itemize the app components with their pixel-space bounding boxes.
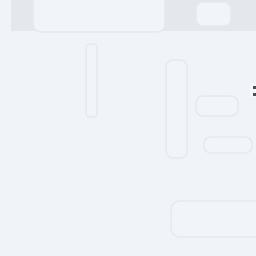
button[interactable]: Chip two — [0, 0, 48, 16]
button[interactable]: Card — [0, 0, 95, 36]
button[interactable]: Chip one — [0, 0, 42, 20]
button[interactable]: Menu — [0, 0, 35, 24]
button[interactable]: Search — [0, 0, 132, 46]
